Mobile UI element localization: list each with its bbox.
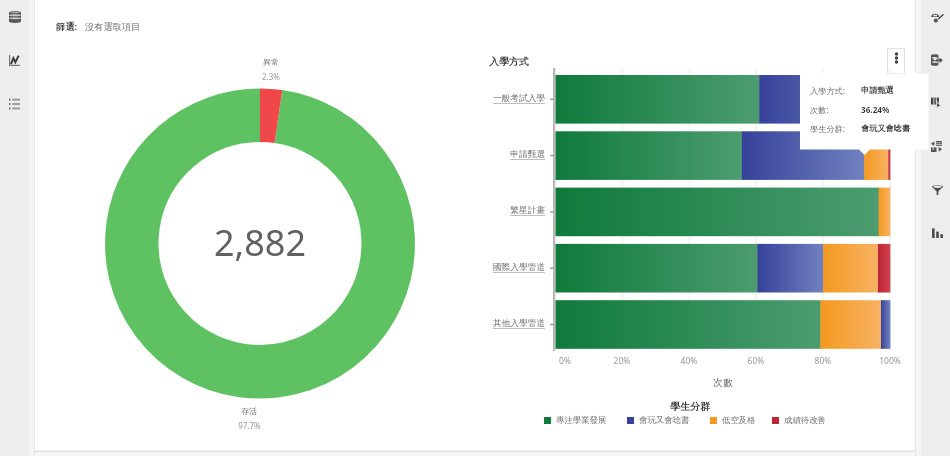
button[interactable]: Data sources bbox=[9, 11, 21, 23]
staticText: 次數 bbox=[683, 377, 763, 389]
staticText: 低空及格 bbox=[722, 415, 756, 426]
button[interactable]: 國際入學管道 bbox=[450, 262, 545, 273]
staticText: 97.7% bbox=[238, 420, 261, 431]
staticText: 40% bbox=[669, 355, 709, 367]
staticText: 存活 bbox=[241, 406, 257, 416]
button[interactable]: Select bbox=[931, 97, 942, 108]
button[interactable]: Highlighter bbox=[931, 11, 943, 23]
staticText: 學生分群 bbox=[645, 400, 735, 413]
button[interactable]: 一般考試入學 bbox=[450, 93, 545, 104]
button[interactable]: Export data bbox=[931, 54, 943, 66]
button[interactable]: 低空及格 bbox=[710, 415, 756, 426]
staticText: 異常 bbox=[263, 57, 279, 67]
staticText: 專注學業發展 bbox=[556, 415, 607, 426]
staticText: 入學方式 bbox=[489, 55, 529, 68]
button[interactable]: Expand bbox=[931, 141, 942, 152]
button[interactable]: Filter bbox=[932, 184, 943, 195]
button[interactable]: Statistics bbox=[932, 227, 943, 238]
staticText: 100% bbox=[870, 355, 910, 367]
staticText: 國際入學管道 bbox=[450, 262, 545, 273]
staticText: 20% bbox=[602, 355, 642, 367]
staticText: 36.24% bbox=[861, 104, 890, 115]
staticText: 2.3% bbox=[262, 71, 280, 82]
staticText: 會玩又會唸書 bbox=[639, 415, 690, 426]
staticText: 繁星計畫 bbox=[450, 205, 545, 216]
button[interactable]: 成績待改善 bbox=[772, 415, 826, 426]
button[interactable]: 會玩又會唸書 bbox=[627, 415, 690, 426]
button[interactable]: 申請甄選 bbox=[450, 149, 545, 160]
staticText: 其他入學管道 bbox=[450, 318, 545, 329]
staticText: 沒有選取項目 bbox=[85, 21, 141, 33]
staticText: 一般考試入學 bbox=[450, 93, 545, 104]
button[interactable]: 其他入學管道 bbox=[450, 318, 545, 329]
staticText: 會玩又會唸書 bbox=[861, 123, 911, 133]
staticText: 2,882 bbox=[190, 218, 330, 267]
staticText: 0% bbox=[545, 355, 585, 367]
button[interactable]: 專注學業發展 bbox=[544, 415, 607, 426]
staticText: 學生分群: bbox=[810, 123, 845, 134]
staticText: 次數: bbox=[810, 104, 829, 115]
staticText: 申請甄選 bbox=[450, 149, 545, 160]
button[interactable]: 繁星計畫 bbox=[450, 205, 545, 216]
staticText: 80% bbox=[803, 355, 843, 367]
staticText: 申請甄選 bbox=[861, 85, 894, 95]
staticText: 60% bbox=[736, 355, 776, 367]
button[interactable]: List view bbox=[9, 98, 20, 109]
button[interactable]: Charts bbox=[9, 55, 20, 66]
button[interactable]: More options bbox=[887, 48, 905, 74]
staticText: 成績待改善 bbox=[784, 415, 826, 426]
staticText: 入學方式: bbox=[810, 85, 845, 96]
staticText: 篩選: bbox=[56, 20, 77, 33]
